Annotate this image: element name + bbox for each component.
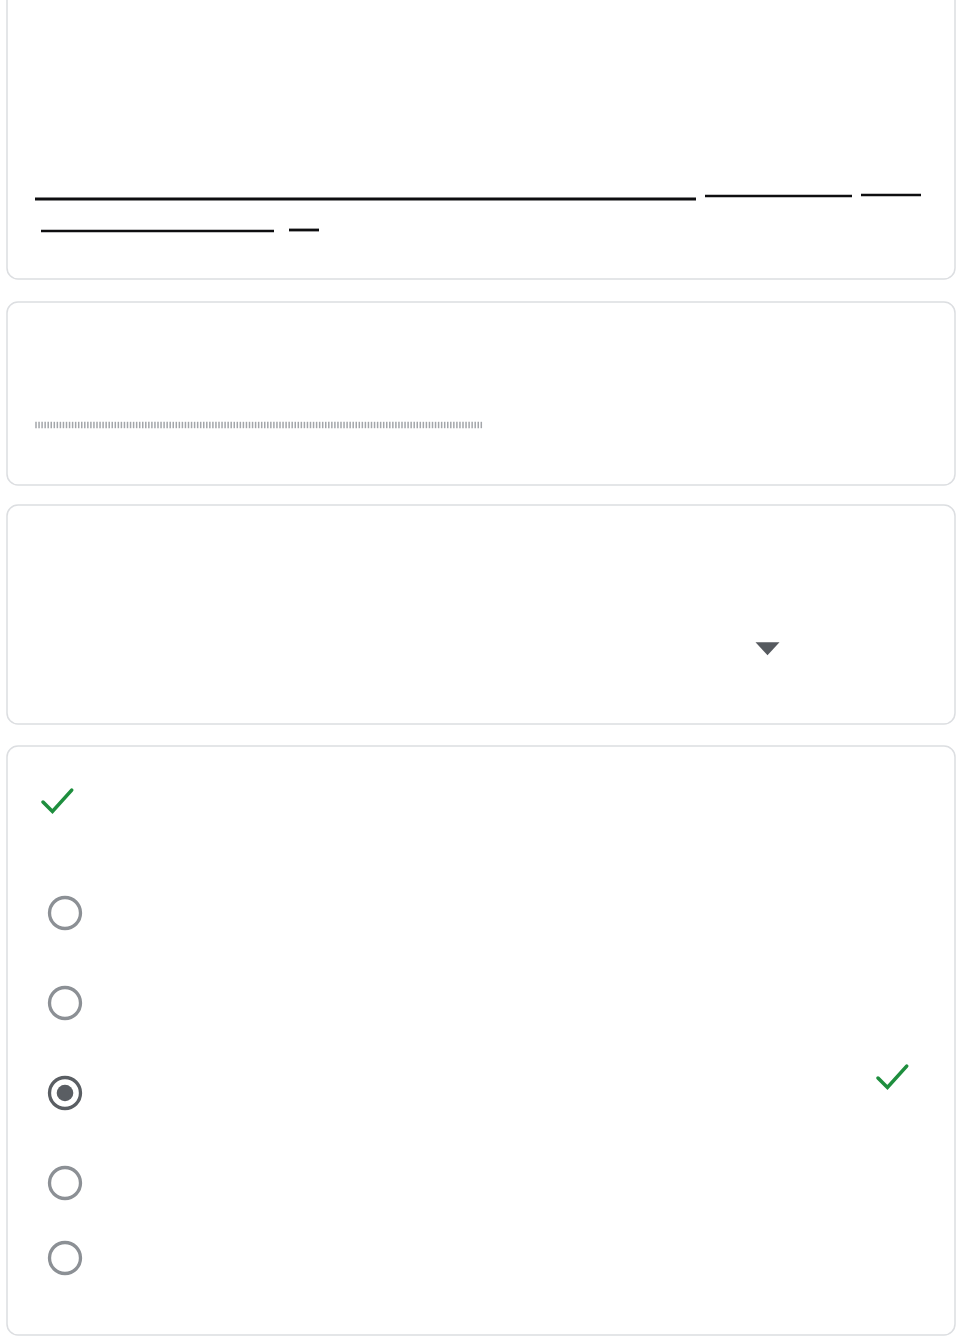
button[interactable]: Option 2: [7, 970, 955, 1036]
button[interactable]: Option 5: [7, 1225, 955, 1291]
button[interactable]: Option 3: [7, 1060, 955, 1126]
button[interactable]: Choose option: [7, 505, 955, 724]
button[interactable]: Option 1: [7, 880, 955, 946]
button[interactable]: Correct answer: [7, 770, 955, 850]
button[interactable]: Option 4: [7, 1150, 955, 1216]
button[interactable]: Open dropdown: [738, 618, 798, 678]
